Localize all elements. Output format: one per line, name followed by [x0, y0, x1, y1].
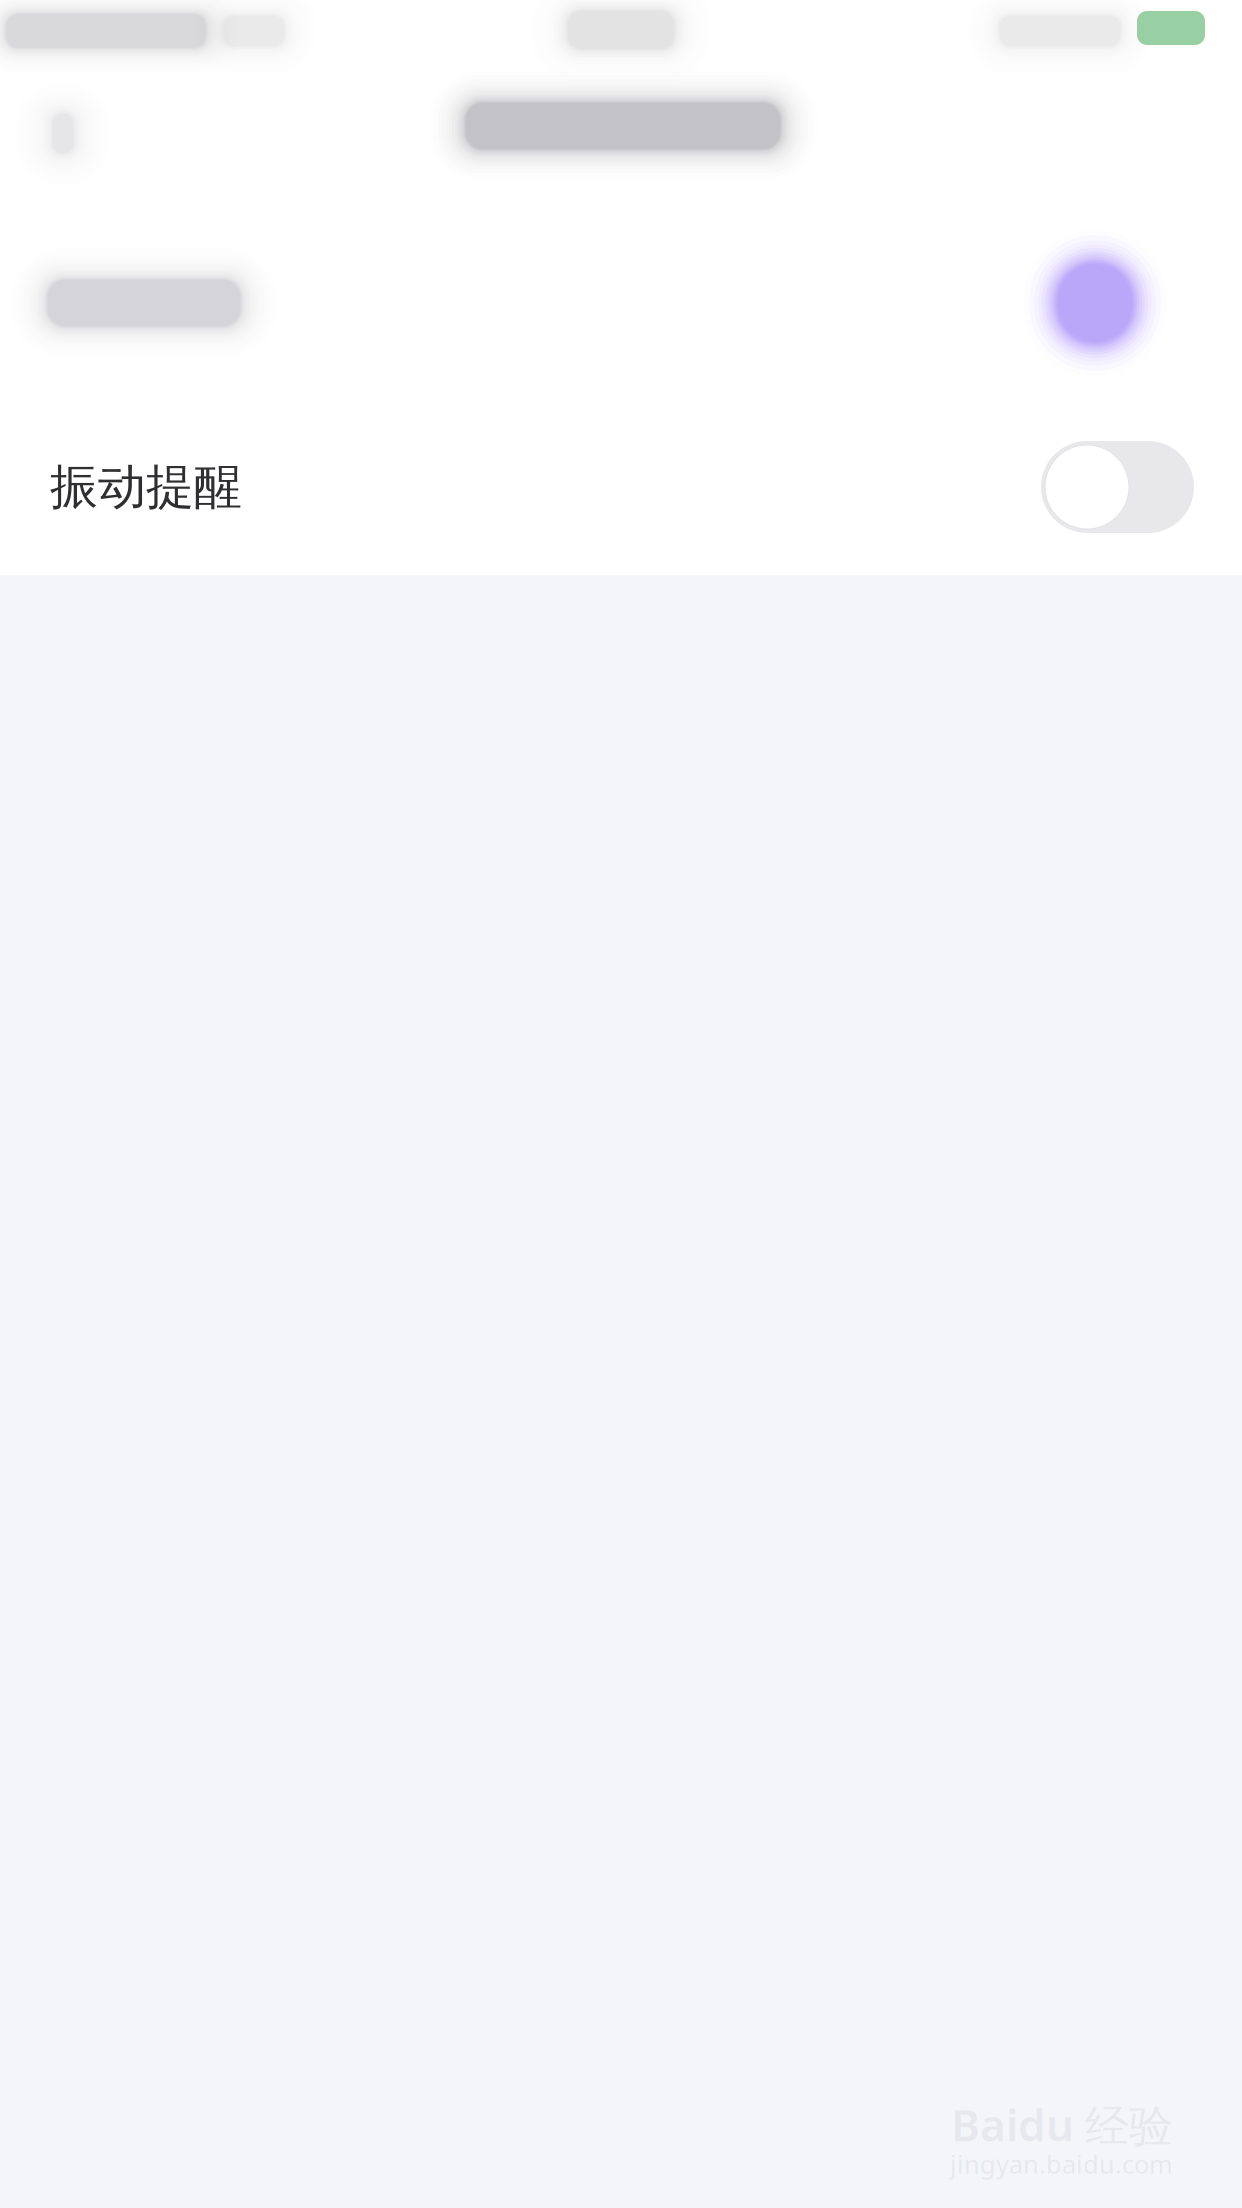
- button[interactable]: Back: [3, 60, 123, 207]
- button[interactable]: 振动提醒: [0, 399, 1242, 575]
- button[interactable]: [0, 207, 1242, 399]
- staticText: Baidu 经验: [951, 2095, 1173, 2154]
- staticText: jingyan.baidu.com: [950, 2147, 1173, 2181]
- staticText: 振动提醒: [50, 457, 242, 516]
